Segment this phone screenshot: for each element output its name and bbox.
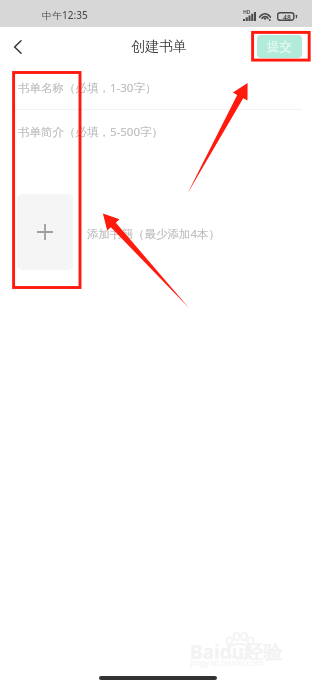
staticText: 创建书单 bbox=[131, 38, 187, 56]
button[interactable]: Back bbox=[0, 30, 36, 64]
staticText: 书单简介（必填，5-500字） bbox=[18, 124, 164, 140]
staticText: 提交 bbox=[267, 39, 292, 55]
button[interactable]: 提交 bbox=[257, 35, 302, 58]
staticText: jingyan.baidu.com bbox=[190, 657, 264, 669]
staticText: HD bbox=[243, 9, 251, 16]
staticText: Baidu经验 bbox=[190, 639, 283, 665]
staticText: 48 bbox=[283, 13, 292, 23]
button[interactable]: 书单名称（必填，1-30字） bbox=[18, 67, 312, 109]
staticText: 书单名称（必填，1-30字） bbox=[18, 80, 157, 96]
staticText: 添加书籍（最少添加4本） bbox=[87, 226, 221, 242]
staticText: 中午12:35 bbox=[42, 8, 88, 22]
button[interactable]: 书单简介（必填，5-500字） bbox=[18, 124, 312, 180]
button[interactable]: Add book bbox=[17, 194, 73, 270]
